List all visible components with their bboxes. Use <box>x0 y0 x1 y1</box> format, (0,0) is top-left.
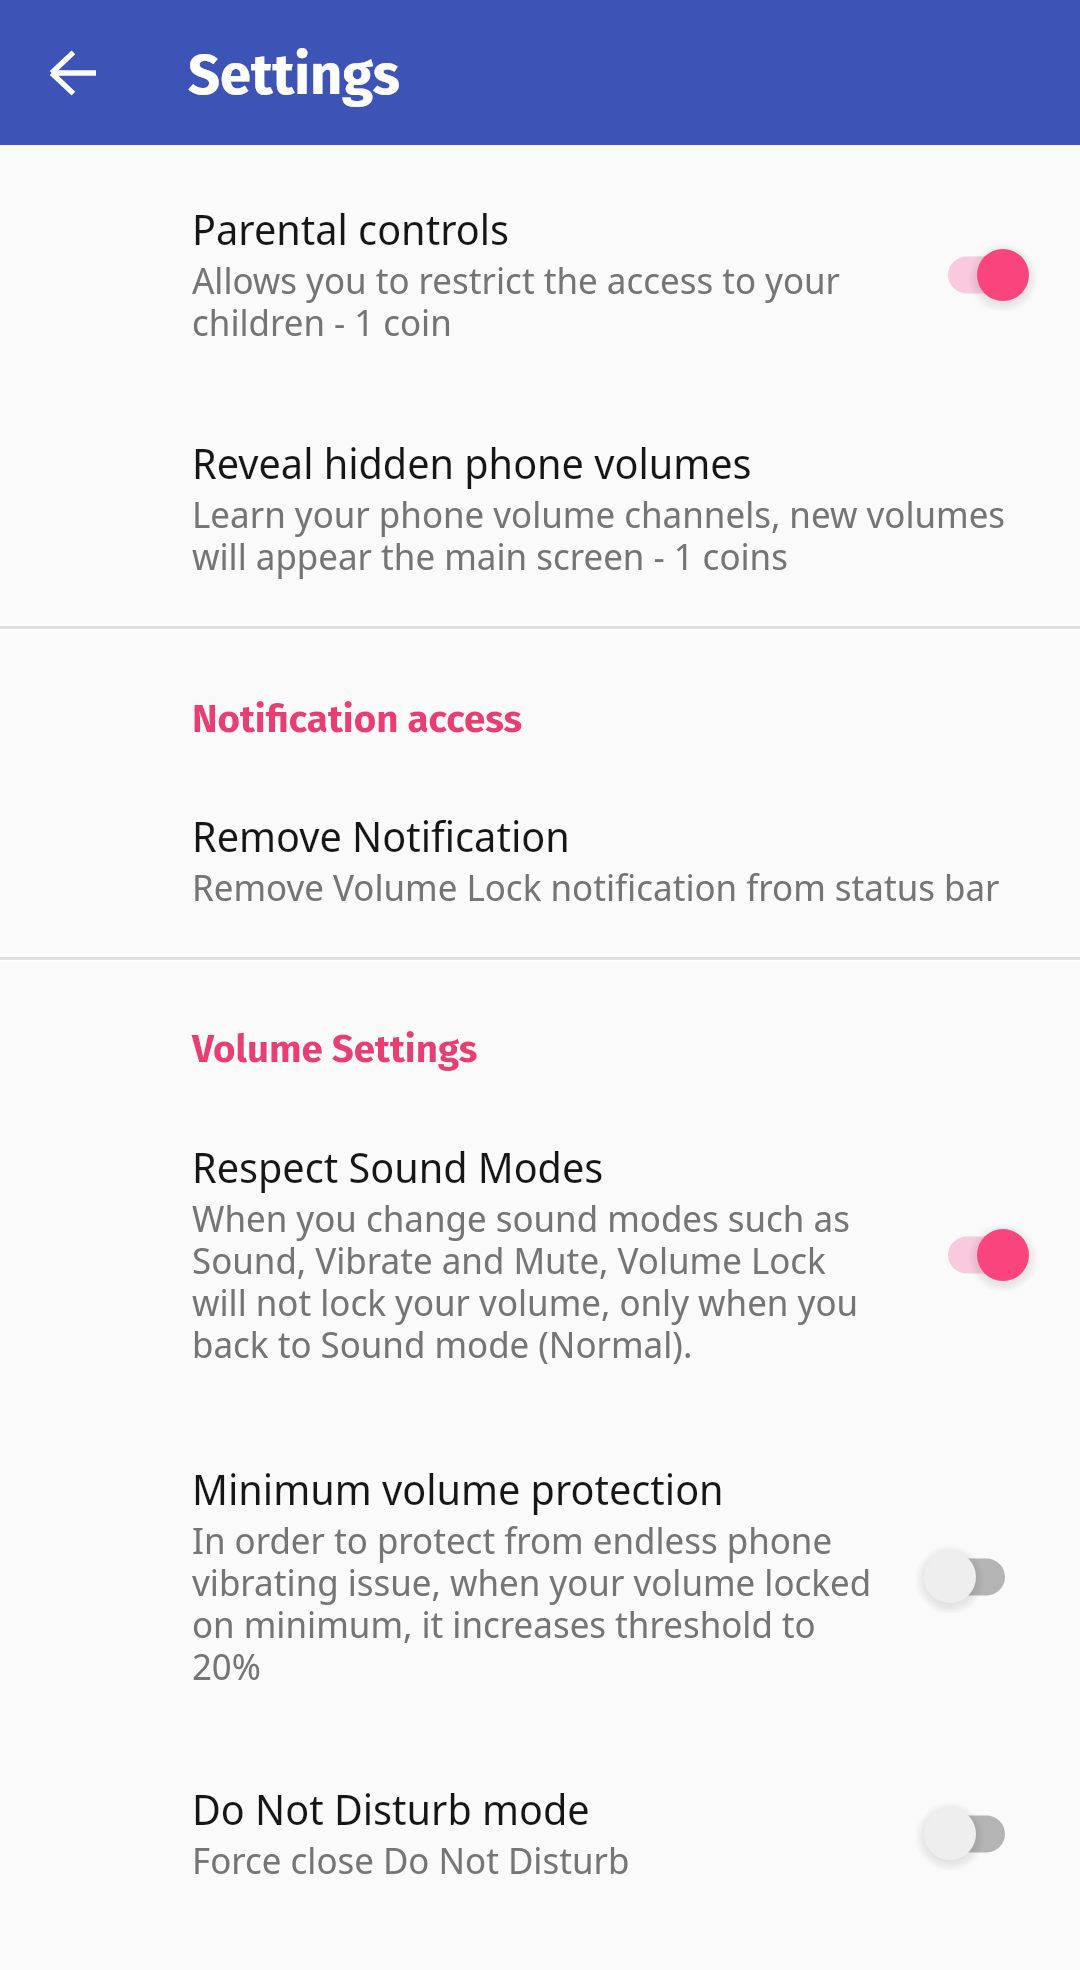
button[interactable]: Reveal hidden phone volumes <box>0 438 1080 579</box>
staticText: Notification access <box>192 698 523 742</box>
button[interactable]: Parental controls <box>0 204 1080 345</box>
button[interactable]: Do Not Disturb mode toggle <box>890 1798 1050 1870</box>
staticText: When you change sound modes such as Soun… <box>192 1199 882 1367</box>
button[interactable]: Minimum volume protection toggle <box>890 1541 1050 1613</box>
staticText: Learn your phone volume channels, new vo… <box>192 495 1012 579</box>
staticText: Settings <box>188 42 400 109</box>
staticText: Respect Sound Modes <box>192 1142 604 1194</box>
staticText: Reveal hidden phone volumes <box>192 438 752 490</box>
staticText: Force close Do Not Disturb <box>192 1841 630 1883</box>
staticText: In order to protect from endless phone v… <box>192 1521 882 1689</box>
button[interactable]: Back <box>27 27 119 119</box>
button[interactable]: Respect Sound Modes <box>0 1142 1080 1367</box>
button[interactable]: Remove Notification <box>0 811 1080 910</box>
button[interactable]: Do Not Disturb mode <box>0 1784 1080 1883</box>
staticText: Remove Notification <box>192 811 570 863</box>
staticText: Remove Volume Lock notification from sta… <box>192 868 1000 910</box>
button[interactable]: Respect Sound Modes toggle <box>890 1219 1050 1291</box>
button[interactable]: Minimum volume protection <box>0 1464 1080 1689</box>
staticText: Do Not Disturb mode <box>192 1784 590 1836</box>
staticText: Parental controls <box>192 204 509 256</box>
button[interactable]: Parental controls toggle <box>890 239 1050 311</box>
staticText: Volume Settings <box>192 1028 478 1072</box>
staticText: Allows you to restrict the access to you… <box>192 261 882 345</box>
staticText: Minimum volume protection <box>192 1464 724 1516</box>
